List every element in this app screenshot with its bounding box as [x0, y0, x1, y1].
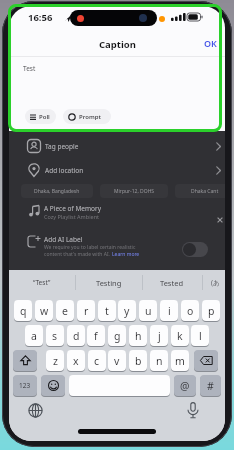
staticText: OK [204, 37, 217, 49]
staticText: o [187, 304, 194, 318]
button[interactable] [182, 242, 208, 257]
staticText: We require you to label certain realisti… [44, 244, 136, 251]
button[interactable]: u [139, 300, 157, 321]
staticText: Mirpur-12, DOHS [114, 188, 155, 195]
button[interactable] [194, 350, 218, 371]
button[interactable]: Dhaka, Bangladesh [21, 184, 93, 198]
staticText: Caption [99, 38, 136, 51]
staticText: m [175, 354, 185, 368]
button[interactable]: i [160, 300, 178, 321]
staticText: z [53, 354, 58, 368]
staticText: j [158, 329, 161, 343]
button[interactable]: z [46, 350, 64, 371]
button[interactable]: x [67, 350, 85, 371]
button[interactable]: e [56, 300, 74, 321]
button[interactable]: Dhaka Cant [175, 184, 225, 198]
button[interactable] [41, 375, 65, 396]
staticText: Learn more [112, 251, 140, 258]
button[interactable]: Testing [75, 270, 142, 295]
button[interactable]: Prompt [63, 109, 111, 124]
button[interactable]: b [129, 350, 147, 371]
button[interactable] [69, 375, 170, 396]
staticText: (あ [211, 278, 220, 287]
staticText: b [135, 354, 142, 368]
button[interactable] [217, 217, 223, 223]
staticText: Dhaka, Bangladesh [34, 188, 80, 195]
button[interactable]: Tested [142, 270, 202, 295]
staticText: Tested [160, 278, 184, 288]
staticText: @ [180, 379, 190, 393]
button[interactable]: j [150, 325, 168, 346]
button[interactable] [9, 202, 225, 228]
staticText: h [135, 329, 142, 343]
button[interactable] [9, 159, 225, 183]
staticText: 123 [19, 381, 31, 390]
button[interactable]: 123 [13, 375, 37, 396]
button[interactable]: OK [197, 36, 223, 50]
staticText: g [114, 329, 121, 343]
staticText: v [114, 354, 120, 368]
button[interactable]: l [191, 325, 209, 346]
button[interactable]: (あ [205, 270, 225, 295]
staticText: n [156, 354, 163, 368]
button[interactable]: g [108, 325, 126, 346]
button[interactable]: y [118, 300, 136, 321]
staticText: “Test” [33, 278, 51, 287]
staticText: # [207, 379, 214, 393]
button[interactable]: v [108, 350, 126, 371]
button[interactable]: k [171, 325, 189, 346]
button[interactable]: r [77, 300, 95, 321]
staticText: l [199, 329, 202, 343]
staticText: s [52, 329, 58, 343]
staticText: Add location [45, 166, 84, 175]
staticText: d [73, 329, 80, 343]
staticText: Dhaka Cant [191, 188, 219, 195]
button[interactable]: a [25, 325, 43, 346]
button[interactable]: # [200, 375, 221, 396]
button[interactable] [13, 350, 37, 371]
staticText: 16:56 [28, 11, 53, 24]
button[interactable]: t [98, 300, 116, 321]
staticText: Prompt [79, 113, 101, 121]
button[interactable]: n [150, 350, 168, 371]
button[interactable] [187, 402, 199, 419]
button[interactable]: d [67, 325, 85, 346]
button[interactable]: p [202, 300, 220, 321]
staticText: content that's made with AI. [44, 251, 112, 258]
button[interactable]: f [87, 325, 105, 346]
button[interactable]: h [129, 325, 147, 346]
staticText: q [20, 304, 27, 318]
staticText: Test [23, 64, 36, 73]
staticText: Poll [39, 113, 50, 121]
staticText: p [208, 304, 215, 318]
staticText: r [84, 304, 89, 318]
staticText: i [168, 304, 171, 318]
staticText: a [31, 329, 37, 343]
staticText: Cozy Playlist Ambient [44, 213, 100, 220]
button[interactable] [28, 403, 43, 418]
button[interactable] [9, 134, 225, 158]
button[interactable]: o [181, 300, 199, 321]
button[interactable]: q [14, 300, 32, 321]
staticText: k [177, 329, 183, 343]
staticText: Testing [96, 278, 122, 288]
staticText: y [124, 304, 130, 318]
button[interactable]: “Test” [9, 270, 75, 295]
staticText: w [40, 304, 49, 318]
button[interactable]: Mirpur-12, DOHS [100, 184, 168, 198]
button[interactable]: @ [174, 375, 196, 396]
staticText: Add AI Label [44, 235, 83, 244]
button[interactable]: w [35, 300, 53, 321]
staticText: Tag people [45, 142, 79, 151]
staticText: t [105, 304, 109, 318]
staticText: c [94, 354, 100, 368]
button[interactable]: m [171, 350, 189, 371]
button[interactable]: c [88, 350, 106, 371]
button[interactable]: s [46, 325, 64, 346]
staticText: f [94, 329, 98, 343]
staticText: e [62, 304, 68, 318]
staticText: A Piece of Memory [44, 204, 102, 213]
button[interactable]: Poll [25, 109, 56, 124]
staticText: x [73, 354, 79, 368]
staticText: u [145, 304, 152, 318]
